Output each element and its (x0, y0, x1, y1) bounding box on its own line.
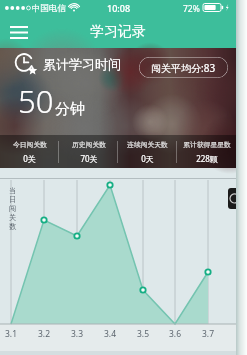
staticText: 学习记录 (90, 23, 146, 41)
staticText: 228颗 (196, 153, 218, 164)
staticText: 70关 (80, 153, 98, 164)
staticText: 累计学习时间 (43, 56, 121, 72)
staticText: 日 (9, 195, 17, 204)
staticText: 3.7 (202, 328, 215, 340)
staticText: 3.4 (104, 328, 117, 340)
staticText: 10:08 (107, 2, 131, 14)
button[interactable]: Open navigation menu (5, 18, 33, 46)
staticText: 累计获得星星数 (183, 140, 231, 149)
staticText: 0关 (23, 153, 36, 164)
staticText: 数 (9, 222, 17, 231)
staticText: 连续闯关天数 (127, 140, 168, 149)
staticText: 72% (183, 3, 200, 15)
staticText: 3.3 (71, 328, 84, 340)
staticText: 关 (9, 213, 17, 222)
staticText: 3.1 (5, 328, 18, 340)
staticText: 闯关平均分:83 (151, 61, 216, 75)
button[interactable]: 闯关平均分:83 (139, 57, 228, 78)
staticText: 3.2 (38, 328, 51, 340)
staticText: 今日闯关数 (13, 140, 47, 149)
staticText: 3.5 (137, 328, 150, 340)
staticText: 50 (18, 80, 54, 122)
staticText: 中国电信 (32, 3, 66, 14)
staticText: 历史闯关数 (72, 140, 106, 149)
button[interactable]: 连续闯关天数 (118, 135, 177, 168)
button[interactable]: 累计获得星星数 (177, 135, 236, 168)
staticText: 0天 (141, 153, 154, 164)
button[interactable]: 历史闯关数 (59, 135, 118, 168)
button[interactable]: Open side panel (228, 188, 236, 209)
staticText: 3.6 (169, 328, 182, 340)
staticText: 分钟 (55, 100, 85, 119)
staticText: 闯 (9, 204, 17, 213)
button[interactable]: 今日闯关数 (0, 135, 59, 168)
staticText: 当 (9, 186, 17, 195)
